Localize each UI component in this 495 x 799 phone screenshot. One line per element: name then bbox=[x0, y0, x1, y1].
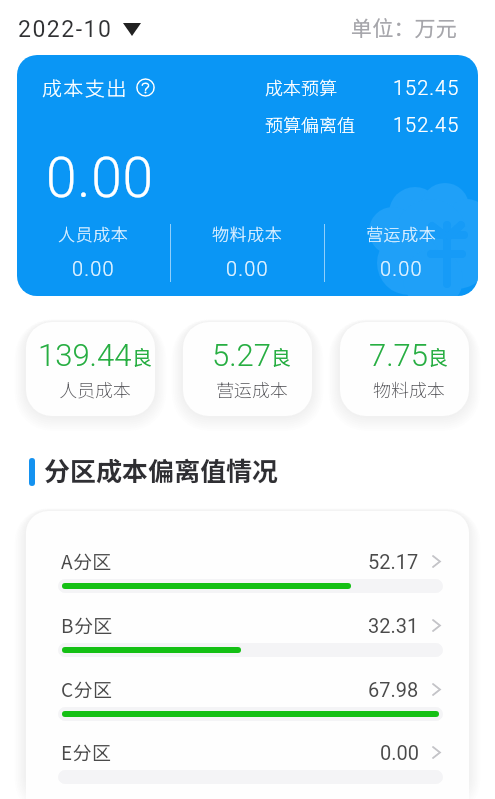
staticText: 67.98 bbox=[368, 678, 419, 701]
staticText: 人员成本 bbox=[59, 376, 131, 402]
button[interactable]: A分区 bbox=[61, 547, 419, 575]
staticText: 营运成本 bbox=[216, 376, 288, 402]
button[interactable]: C分区 bbox=[61, 675, 419, 703]
button[interactable]: 营运成本 bbox=[325, 221, 478, 280]
staticText: 52.17 bbox=[368, 550, 419, 573]
staticText: 0.00 bbox=[226, 257, 269, 280]
staticText: 152.45 bbox=[393, 113, 460, 136]
staticText: 人员成本 bbox=[58, 221, 129, 246]
button[interactable]: 人员成本 bbox=[17, 221, 170, 280]
staticText: 2022-10 bbox=[18, 16, 113, 43]
staticText: B分区 bbox=[61, 611, 113, 639]
staticText: 良 bbox=[428, 342, 448, 371]
button[interactable]: 成本支出说明 bbox=[42, 73, 155, 102]
button[interactable]: 物料成本 bbox=[171, 221, 324, 280]
staticText: 0.00 bbox=[46, 146, 154, 210]
staticText: 5.27 bbox=[212, 337, 271, 373]
staticText: 物料成本 bbox=[212, 221, 283, 246]
button[interactable]: 139.44 bbox=[26, 322, 155, 416]
staticText: 良 bbox=[132, 342, 152, 371]
button[interactable]: B分区 bbox=[61, 611, 419, 639]
button[interactable]: E分区 bbox=[61, 738, 419, 766]
staticText: 0.00 bbox=[72, 257, 115, 280]
staticText: 0.00 bbox=[380, 741, 419, 764]
staticText: A分区 bbox=[61, 547, 112, 575]
staticText: 0.00 bbox=[380, 257, 423, 280]
button[interactable]: 成本支出说明 bbox=[17, 55, 478, 296]
staticText: 分区成本偏离值情况 bbox=[44, 451, 279, 489]
staticText: 物料成本 bbox=[373, 376, 445, 402]
button[interactable]: 5.27 bbox=[183, 322, 312, 416]
staticText: 预算偏离值 bbox=[265, 111, 355, 137]
staticText: 32.31 bbox=[368, 614, 419, 637]
staticText: 成本支出 bbox=[42, 73, 128, 102]
staticText: 成本预算 bbox=[265, 74, 337, 100]
staticText: 139.44 bbox=[38, 337, 132, 373]
staticText: C分区 bbox=[61, 675, 113, 703]
button[interactable]: 2022-10 bbox=[18, 16, 141, 43]
staticText: 单位：万元 bbox=[351, 12, 457, 42]
staticText: 152.45 bbox=[393, 76, 460, 99]
button[interactable]: 7.75 bbox=[340, 322, 469, 416]
staticText: 良 bbox=[271, 342, 291, 371]
staticText: 7.75 bbox=[369, 337, 428, 373]
staticText: 营运成本 bbox=[366, 221, 437, 246]
staticText: E分区 bbox=[61, 738, 112, 766]
